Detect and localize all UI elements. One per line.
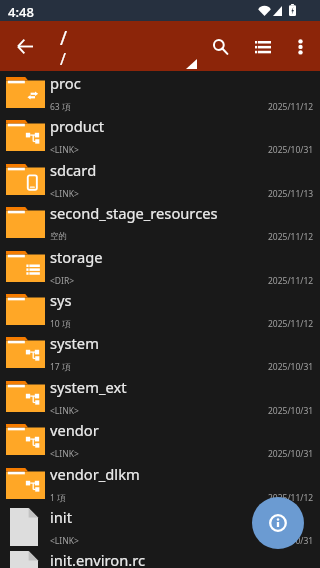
staticText: vendor (50, 420, 99, 440)
staticText: sys (50, 290, 72, 310)
staticText: 2025/11/13 (268, 188, 314, 200)
staticText: / (60, 25, 68, 51)
button[interactable]: init (0, 505, 320, 548)
button[interactable]: vendor_dlkm (0, 462, 320, 505)
staticText: 2025/11/12 (268, 275, 314, 287)
button[interactable]: system_ext (0, 375, 320, 418)
staticText: <DIR> (50, 275, 75, 287)
staticText: 2025/10/31 (268, 535, 314, 547)
button[interactable]: sys (0, 288, 320, 331)
staticText: 2025/11/12 (268, 101, 314, 113)
staticText: proc (50, 73, 81, 93)
staticText: 2025/11/12 (268, 318, 314, 330)
staticText: init.environ.rc (50, 550, 145, 568)
button[interactable]: vendor (0, 418, 320, 461)
staticText: <LINK> (50, 405, 79, 417)
staticText: 63 項 (50, 101, 71, 113)
staticText: 10 項 (50, 318, 71, 330)
staticText: 17 項 (50, 361, 71, 373)
button[interactable]: sdcard (0, 158, 320, 201)
staticText: 2025/10/31 (268, 448, 314, 460)
staticText: <LINK> (50, 535, 79, 547)
button[interactable]: init.environ.rc (0, 548, 320, 568)
button[interactable]: Search (198, 21, 242, 71)
staticText: init (50, 507, 72, 527)
staticText: 2025/10/31 (268, 144, 314, 156)
button[interactable]: storage (0, 245, 320, 288)
staticText: 2025/10/31 (268, 405, 314, 417)
staticText: system_ext (50, 377, 127, 397)
staticText: 2025/10/31 (268, 361, 314, 373)
button[interactable]: system (0, 331, 320, 374)
button[interactable]: second_stage_resources (0, 201, 320, 244)
staticText: storage (50, 247, 103, 267)
staticText: vendor_dlkm (50, 464, 140, 484)
button[interactable]: product (0, 114, 320, 157)
button[interactable]: proc (0, 71, 320, 114)
staticText: product (50, 116, 105, 136)
staticText: 4:48 (8, 3, 34, 21)
staticText: 2025/11/12 (268, 231, 314, 243)
button[interactable]: Back (2, 21, 48, 71)
staticText: / (60, 48, 66, 70)
staticText: <LINK> (50, 144, 79, 156)
staticText: <LINK> (50, 448, 79, 460)
staticText: second_stage_resources (50, 203, 218, 223)
button[interactable]: Info (252, 497, 304, 549)
staticText: 1 項 (50, 492, 66, 504)
button[interactable]: More options (280, 21, 320, 71)
staticText: sdcard (50, 160, 97, 180)
staticText: 2025/11/12 (268, 492, 314, 504)
button[interactable]: View mode (241, 21, 285, 71)
staticText: <LINK> (50, 188, 79, 200)
staticText: 空的 (50, 231, 67, 242)
staticText: system (50, 333, 99, 353)
